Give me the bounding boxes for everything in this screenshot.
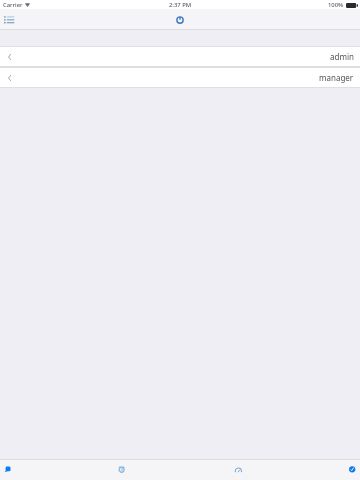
staticText: admin [330,51,354,62]
button[interactable]: Messages [0,460,47,480]
button[interactable]: admin [0,47,360,66]
staticText: manager [319,72,354,83]
button[interactable]: List [2,13,16,25]
staticText: Carrier [3,1,23,9]
button[interactable]: manager [0,68,360,87]
button[interactable]: Done [312,460,360,480]
staticText: 100% [328,1,344,9]
button[interactable]: Speed [197,460,277,480]
staticText: 2:37 PM [169,1,192,9]
button[interactable]: Power [174,14,186,26]
button[interactable]: Alarm [81,460,161,480]
